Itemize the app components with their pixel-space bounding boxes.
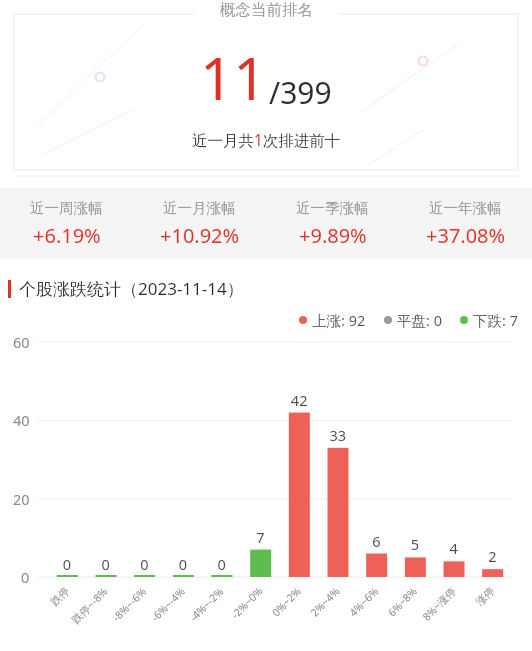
button[interactable]: 概念当前排名 <box>0 0 532 182</box>
button[interactable]: 近一年涨幅 <box>399 199 532 249</box>
button[interactable]: 近一月涨幅 <box>133 199 266 249</box>
staticText: /399 <box>269 72 332 113</box>
staticText: +9.89% <box>299 222 367 249</box>
staticText: 下跌: 7 <box>473 310 518 330</box>
staticText: 上涨: 92 <box>312 310 366 330</box>
other: 个股涨跌分布柱状图 <box>0 334 532 626</box>
staticText: +10.92% <box>160 222 240 249</box>
staticText: 近一月共1次排进前十 <box>192 129 341 150</box>
button[interactable]: 下跌: 7 <box>460 310 518 330</box>
staticText: 概念当前排名 <box>220 0 313 20</box>
button[interactable]: 上涨: 92 <box>299 310 366 330</box>
staticText: 近一周涨幅 <box>30 199 103 217</box>
button[interactable]: 近一周涨幅 <box>0 199 133 249</box>
staticText: 近一月涨幅 <box>163 199 236 217</box>
staticText: 平盘: 0 <box>397 310 442 330</box>
staticText: 近一年涨幅 <box>429 199 502 217</box>
staticText: 个股涨跌统计（2023-11-14） <box>19 277 244 300</box>
button[interactable]: 平盘: 0 <box>384 310 442 330</box>
staticText: 近一季涨幅 <box>296 199 369 217</box>
staticText: 11 <box>200 38 267 117</box>
staticText: +37.08% <box>426 222 506 249</box>
button[interactable]: 近一季涨幅 <box>266 199 399 249</box>
button[interactable]: 个股涨跌统计（2023-11-14） <box>8 277 532 300</box>
staticText: +6.19% <box>33 222 101 249</box>
